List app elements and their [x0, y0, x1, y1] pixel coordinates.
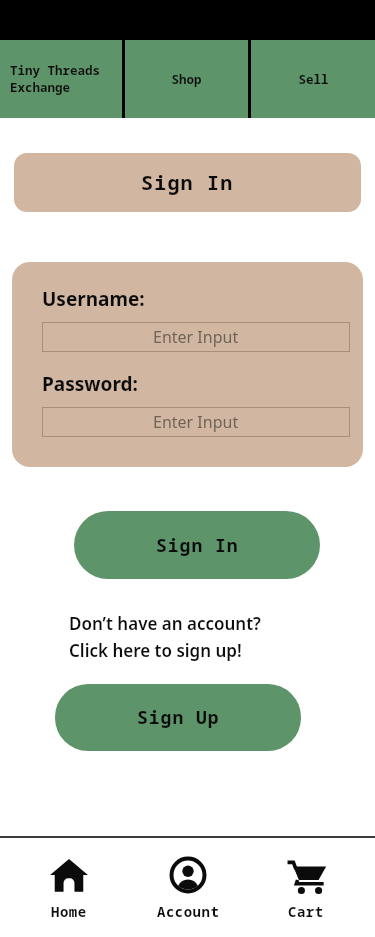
button[interactable]: Cart — [256, 838, 356, 937]
staticText: Enter Input — [153, 411, 239, 433]
other: Home — [48, 854, 90, 896]
staticText: Sign Up — [137, 705, 220, 730]
staticText: Sell — [298, 71, 329, 88]
staticText: Don’t have an account? — [69, 612, 261, 635]
staticText: Home — [51, 902, 87, 921]
staticText: Password: — [42, 371, 138, 397]
button[interactable]: Enter Input — [42, 322, 350, 352]
staticText: Click here to sign up! — [69, 639, 242, 662]
button[interactable]: Sign In — [74, 511, 320, 579]
staticText: Shop — [171, 71, 202, 88]
button[interactable]: Home — [19, 838, 119, 937]
staticText: Username: — [42, 286, 145, 312]
staticText: Sign In — [141, 169, 234, 196]
button[interactable]: Account — [138, 838, 238, 937]
other: Cart — [285, 854, 327, 896]
button[interactable]: Enter Input — [42, 407, 350, 437]
other: Account — [167, 854, 209, 896]
staticText: Account — [157, 902, 220, 921]
button[interactable]: Sign Up — [55, 684, 301, 751]
button[interactable]: Sell — [251, 40, 375, 118]
button[interactable]: Sign In — [14, 153, 361, 212]
staticText: Cart — [288, 902, 324, 921]
button[interactable]: Shop — [125, 40, 248, 118]
button[interactable]: Tiny Threads Exchange — [0, 40, 122, 118]
staticText: Enter Input — [153, 326, 239, 348]
staticText: Tiny Threads Exchange — [10, 62, 101, 96]
staticText: Sign In — [156, 533, 239, 558]
